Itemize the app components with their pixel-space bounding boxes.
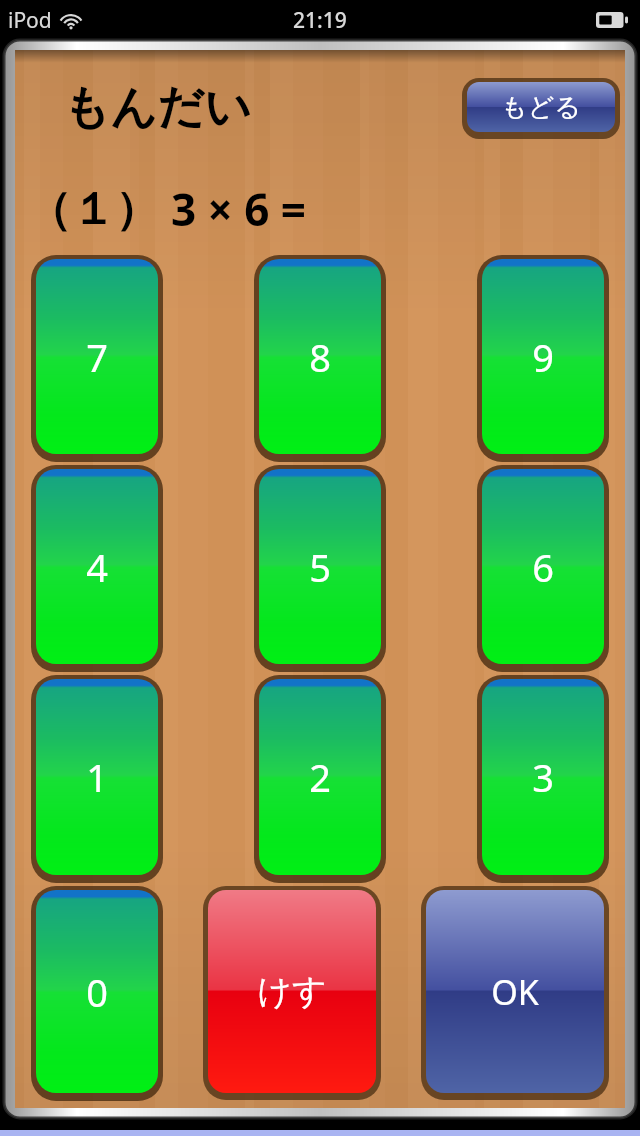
- staticText: 9: [532, 331, 554, 383]
- button[interactable]: 2: [258, 678, 382, 876]
- button[interactable]: 0: [35, 889, 159, 1094]
- staticText: 7: [86, 331, 108, 383]
- button[interactable]: 5: [258, 468, 382, 665]
- staticText: 0: [86, 966, 108, 1018]
- staticText: 5: [309, 541, 331, 593]
- staticText: 4: [86, 541, 108, 593]
- staticText: もんだい: [63, 79, 252, 137]
- staticText: 21:19: [293, 6, 347, 35]
- staticText: iPod: [8, 6, 52, 35]
- button[interactable]: 9: [481, 258, 605, 455]
- button[interactable]: 3: [481, 678, 605, 876]
- staticText: 2: [309, 751, 331, 803]
- staticText: 8: [309, 331, 331, 383]
- button[interactable]: 1: [35, 678, 159, 876]
- staticText: 1: [86, 751, 108, 803]
- staticText: けす: [257, 970, 327, 1013]
- button[interactable]: 6: [481, 468, 605, 665]
- staticText: 3 × 6 =: [171, 179, 306, 239]
- button[interactable]: 4: [35, 468, 159, 665]
- staticText: もどる: [501, 91, 581, 124]
- staticText: 6: [532, 541, 554, 593]
- button[interactable]: 8: [258, 258, 382, 455]
- button[interactable]: もどる: [466, 81, 616, 133]
- staticText: 3: [532, 751, 554, 803]
- button[interactable]: けす: [207, 889, 377, 1094]
- button[interactable]: 7: [35, 258, 159, 455]
- staticText: （１）: [27, 182, 159, 237]
- staticText: OK: [491, 969, 539, 1015]
- button[interactable]: OK: [425, 889, 605, 1094]
